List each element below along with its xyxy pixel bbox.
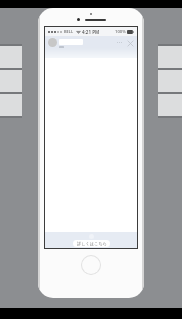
staticText: 4:21 PM	[82, 29, 100, 35]
button[interactable]	[48, 38, 57, 47]
staticText: 詳しくはこちら	[77, 241, 107, 246]
button[interactable]: 詳しくはこちら	[45, 232, 137, 248]
staticText: 100%	[115, 29, 126, 35]
button[interactable]: More options	[116, 41, 123, 44]
button[interactable]: Close	[126, 39, 135, 48]
staticText: BELL	[64, 29, 74, 34]
